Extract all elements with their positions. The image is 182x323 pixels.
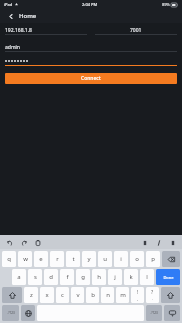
button[interactable]: j xyxy=(108,269,122,285)
button[interactable]: .?123 xyxy=(2,305,19,321)
staticText: b xyxy=(91,291,95,299)
staticText: , xyxy=(137,296,139,301)
button[interactable]: u xyxy=(98,251,112,267)
staticText: u xyxy=(103,255,107,263)
staticText: 2:04 PM xyxy=(82,2,98,7)
staticText: . xyxy=(152,296,154,301)
button[interactable]: p xyxy=(146,251,160,267)
staticText: 7001 xyxy=(130,27,142,34)
staticText: ! xyxy=(137,289,139,296)
button[interactable]: s xyxy=(28,269,42,285)
staticText: Done xyxy=(163,275,174,280)
button[interactable]: c xyxy=(56,287,69,303)
button[interactable]: Connect xyxy=(5,73,177,84)
button[interactable]: x xyxy=(40,287,54,303)
staticText: j xyxy=(114,273,116,281)
staticText: h xyxy=(97,273,101,281)
button[interactable]: h xyxy=(92,269,106,285)
staticText: s xyxy=(34,273,37,281)
staticText: l xyxy=(146,273,148,281)
button[interactable]: Redo xyxy=(19,238,28,247)
button[interactable]: k xyxy=(124,269,138,285)
button[interactable]: l xyxy=(140,269,154,285)
button[interactable]: v xyxy=(71,287,84,303)
staticText: iPad xyxy=(4,2,13,7)
staticText: x xyxy=(45,291,49,299)
staticText: p xyxy=(151,255,155,263)
staticText: f xyxy=(66,273,69,281)
button[interactable]: Undo xyxy=(5,238,14,247)
button[interactable]: 192.168.1.8 xyxy=(5,26,87,35)
staticText: .?123 xyxy=(150,311,158,315)
staticText: g xyxy=(81,273,85,281)
button[interactable]: m xyxy=(116,287,129,303)
staticText: v xyxy=(76,291,80,299)
staticText: m xyxy=(120,291,126,299)
button[interactable]: r xyxy=(50,251,64,267)
staticText: .?123 xyxy=(7,311,15,315)
staticText: o xyxy=(135,255,139,263)
staticText: ? xyxy=(151,289,154,296)
button[interactable]: y xyxy=(82,251,96,267)
button[interactable]: b xyxy=(86,287,99,303)
staticText: 192.168.1.8 xyxy=(5,27,32,34)
button[interactable]: i xyxy=(114,251,128,267)
button[interactable]: admin xyxy=(5,43,177,52)
button[interactable]: Backspace xyxy=(162,251,180,267)
staticText: r xyxy=(56,255,59,263)
staticText: 89% xyxy=(162,2,170,7)
staticText: i xyxy=(120,255,122,263)
button[interactable]: z xyxy=(24,287,38,303)
staticText: y xyxy=(87,255,91,263)
staticText: w xyxy=(23,255,28,263)
button[interactable]: Emoji xyxy=(21,305,35,321)
staticText: z xyxy=(30,291,33,299)
staticText: q xyxy=(7,255,11,263)
button[interactable]: d xyxy=(44,269,58,285)
button[interactable]: w xyxy=(18,251,32,267)
staticText: c xyxy=(61,291,64,299)
button[interactable] xyxy=(5,57,177,66)
staticText: a xyxy=(17,273,21,281)
button[interactable]: Shift xyxy=(161,287,180,303)
staticText: e xyxy=(39,255,43,263)
button[interactable]: g xyxy=(76,269,90,285)
button[interactable]: e xyxy=(34,251,48,267)
button[interactable]: Underline xyxy=(168,238,177,247)
button[interactable]: f xyxy=(60,269,74,285)
staticText: Connect xyxy=(81,75,101,82)
button[interactable]: Shift xyxy=(2,287,22,303)
button[interactable]: ! xyxy=(131,287,144,303)
staticText: Home xyxy=(19,12,37,20)
button[interactable]: a xyxy=(12,269,26,285)
button[interactable]: Hide keyboard xyxy=(164,305,180,321)
staticText: k xyxy=(129,273,133,281)
button[interactable]: o xyxy=(130,251,144,267)
button[interactable]: q xyxy=(2,251,16,267)
button[interactable]: ? xyxy=(146,287,159,303)
button[interactable]: Back xyxy=(5,10,17,22)
button[interactable]: .?123 xyxy=(146,305,162,321)
staticText: d xyxy=(49,273,53,281)
button[interactable]: n xyxy=(101,287,114,303)
staticText: admin xyxy=(5,44,20,51)
button[interactable]: 7001 xyxy=(95,26,177,35)
button[interactable]: Done xyxy=(156,269,180,285)
staticText: n xyxy=(106,291,110,299)
staticText: t xyxy=(72,255,75,263)
button[interactable]: Italic xyxy=(154,238,163,247)
button[interactable]: Paste xyxy=(33,238,42,247)
button[interactable]: t xyxy=(66,251,80,267)
button[interactable]: Bold xyxy=(140,238,149,247)
